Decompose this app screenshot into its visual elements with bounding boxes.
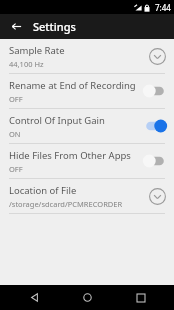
staticText: OFF	[9, 164, 23, 174]
button[interactable]: Back	[0, 14, 33, 39]
button[interactable]: Sample Rate	[0, 39, 174, 73]
staticText: Hide Files From Other Apps	[9, 149, 131, 162]
staticText: Control Of Input Gain	[9, 114, 105, 127]
button[interactable]: Open list	[146, 45, 168, 67]
button[interactable]: Location of File	[0, 179, 174, 213]
staticText: 44,100 Hz	[9, 59, 44, 69]
staticText: Sample Rate	[9, 44, 65, 57]
button[interactable]: Back	[14, 285, 54, 310]
button[interactable]: Toggle on	[142, 116, 168, 136]
staticText: Location of File	[9, 184, 77, 197]
staticText: OFF	[9, 94, 23, 104]
button[interactable]: Home	[67, 285, 107, 310]
staticText: /storage/sdcard/PCMRECORDER	[9, 199, 123, 209]
button[interactable]: Open list	[146, 185, 168, 207]
button[interactable]: Rename at End of Recording	[0, 74, 174, 108]
button[interactable]: Hide Files From Other Apps	[0, 144, 174, 178]
staticText: Settings	[33, 19, 76, 34]
staticText: ON	[9, 129, 21, 139]
button[interactable]: Control Of Input Gain	[0, 109, 174, 143]
staticText: 7:44	[155, 2, 171, 13]
button[interactable]: Recent apps	[121, 285, 161, 310]
staticText: Rename at End of Recording	[9, 79, 136, 92]
button[interactable]: Toggle off	[142, 151, 168, 171]
button[interactable]: Toggle off	[142, 81, 168, 101]
